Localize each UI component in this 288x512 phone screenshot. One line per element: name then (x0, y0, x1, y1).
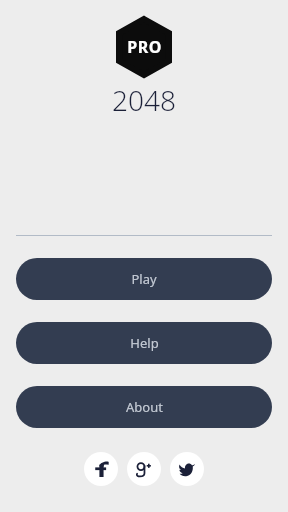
button[interactable]: Play (16, 258, 272, 300)
staticText: Help (130, 334, 159, 352)
button[interactable]: Twitter (170, 452, 204, 486)
button[interactable]: About (16, 386, 272, 428)
staticText: PRO (127, 36, 162, 58)
staticText: About (126, 398, 163, 416)
button[interactable]: Help (16, 322, 272, 364)
button[interactable]: Facebook (84, 452, 118, 486)
button[interactable]: Google Plus (127, 452, 161, 486)
staticText: Play (131, 270, 157, 288)
staticText: 2048 (112, 81, 176, 119)
